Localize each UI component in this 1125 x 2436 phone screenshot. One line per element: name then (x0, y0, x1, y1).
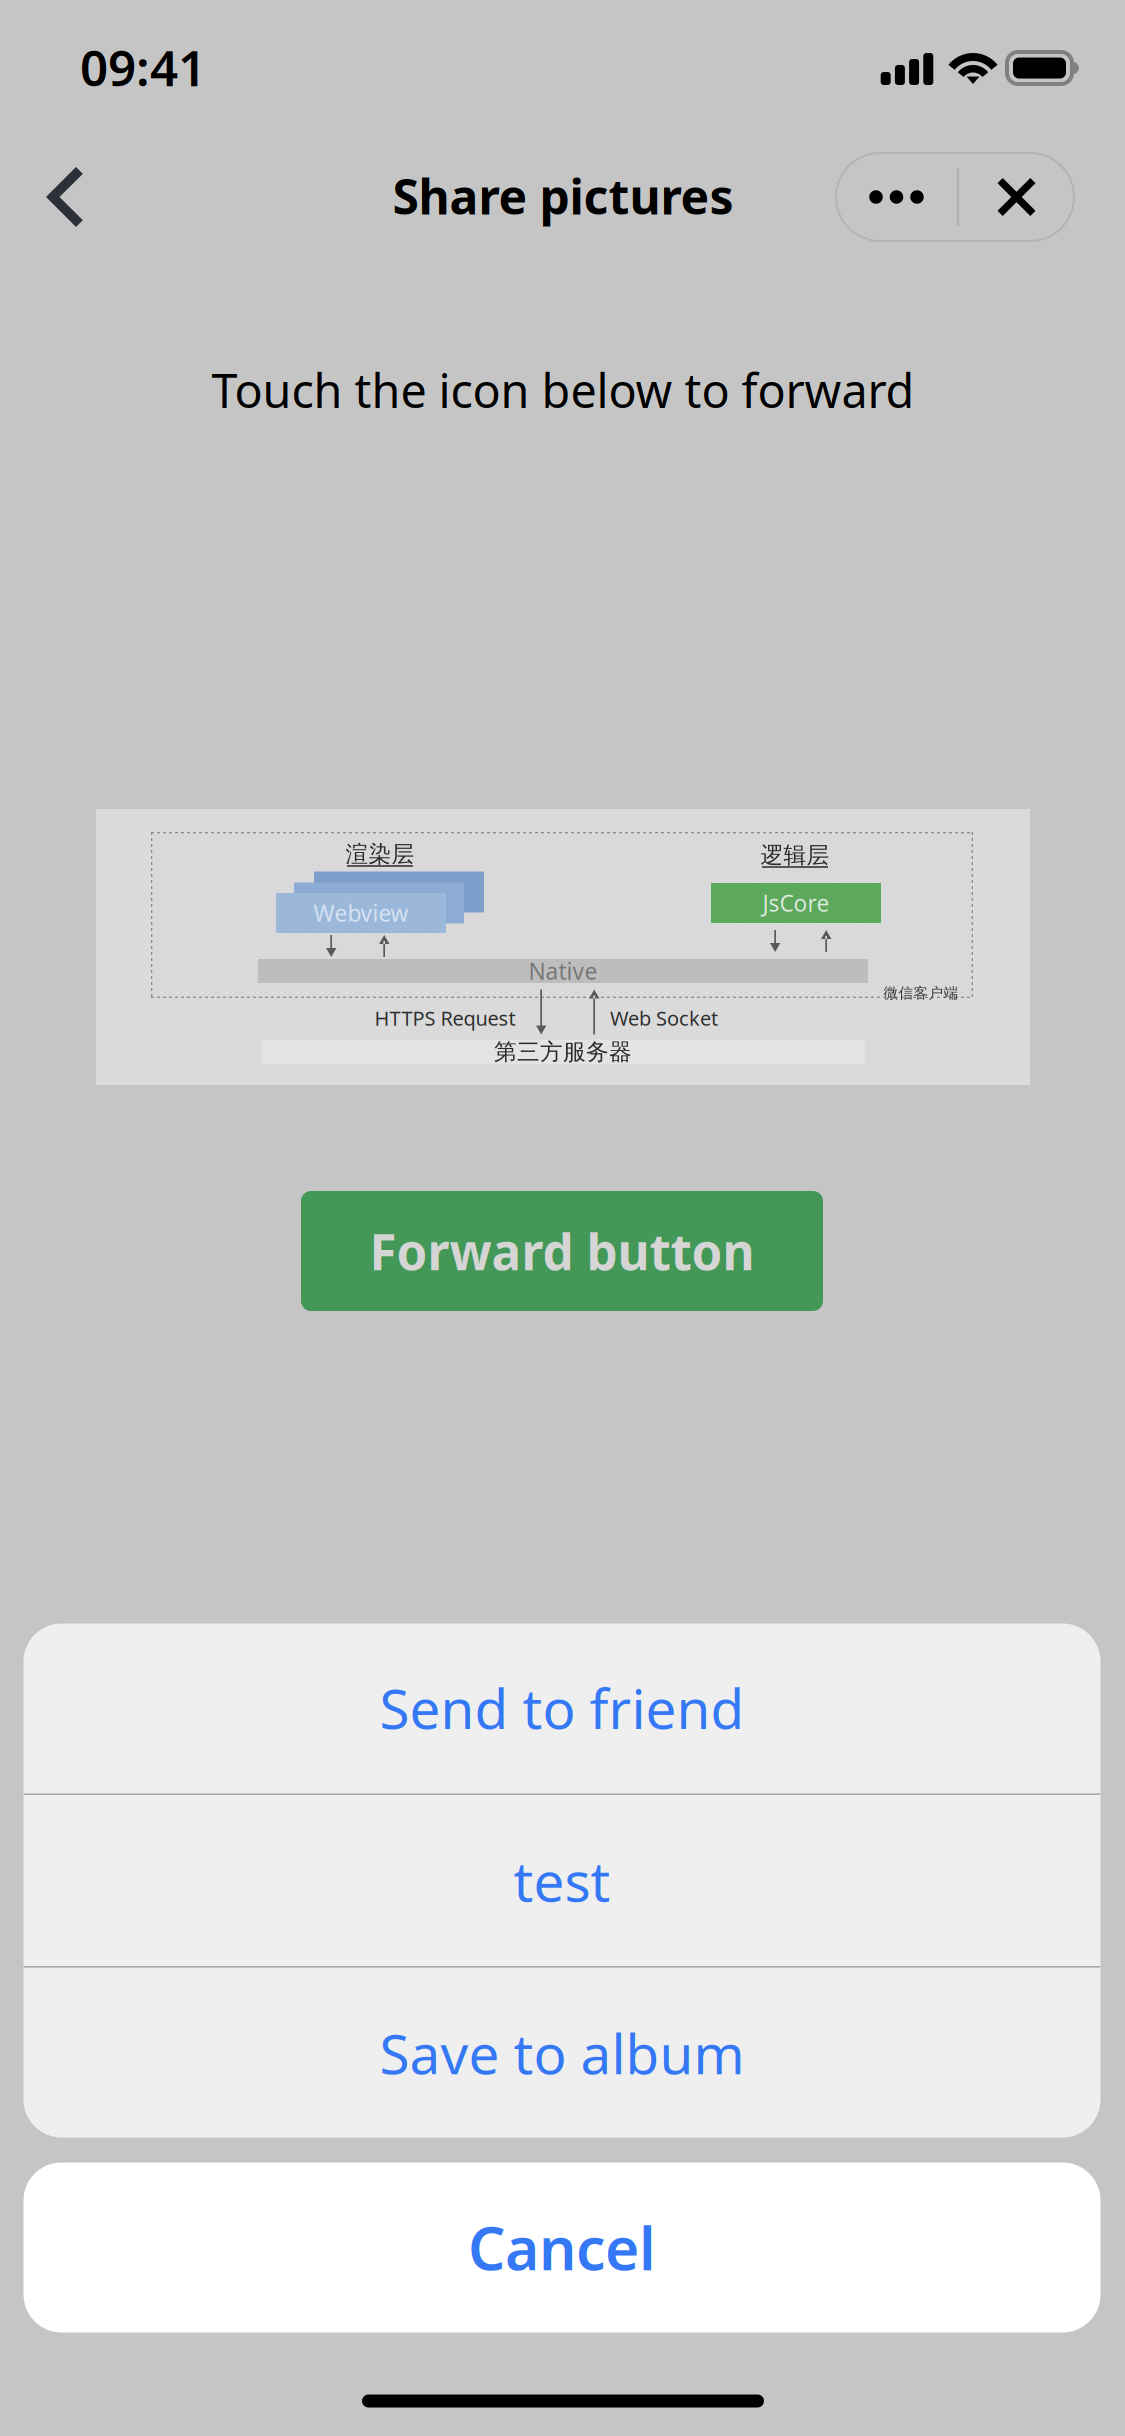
staticText: Native (528, 956, 597, 986)
staticText: 逻辑层 (760, 841, 829, 869)
button[interactable]: More options (836, 153, 957, 241)
button[interactable]: Save to album (23, 1968, 1100, 2139)
staticText: Forward button (369, 1218, 754, 1284)
staticText: HTTPS Request (374, 1005, 515, 1031)
staticText: Web Socket (610, 1005, 718, 1031)
staticText: Webview (313, 898, 408, 928)
staticText: 渲染层 (345, 840, 414, 868)
button[interactable]: Cancel (23, 2162, 1100, 2332)
staticText: 09:41 (80, 34, 206, 100)
button[interactable]: Forward button (301, 1191, 823, 1311)
staticText: 微信客户端 (883, 984, 958, 1002)
staticText: Cancel (468, 2208, 656, 2286)
staticText: 第三方服务器 (494, 1038, 632, 1066)
staticText: Touch the icon below to forward (211, 359, 914, 421)
staticText: Send to friend (379, 1672, 744, 1744)
button[interactable]: Close (959, 153, 1074, 241)
staticText: Share pictures (392, 164, 733, 228)
staticText: JsCore (762, 888, 829, 918)
button[interactable]: Send to friend (23, 1622, 1100, 1793)
staticText: test (513, 1844, 610, 1917)
button[interactable]: Back (11, 142, 121, 252)
button[interactable]: test (23, 1795, 1100, 1966)
staticText: Save to album (379, 2017, 744, 2089)
